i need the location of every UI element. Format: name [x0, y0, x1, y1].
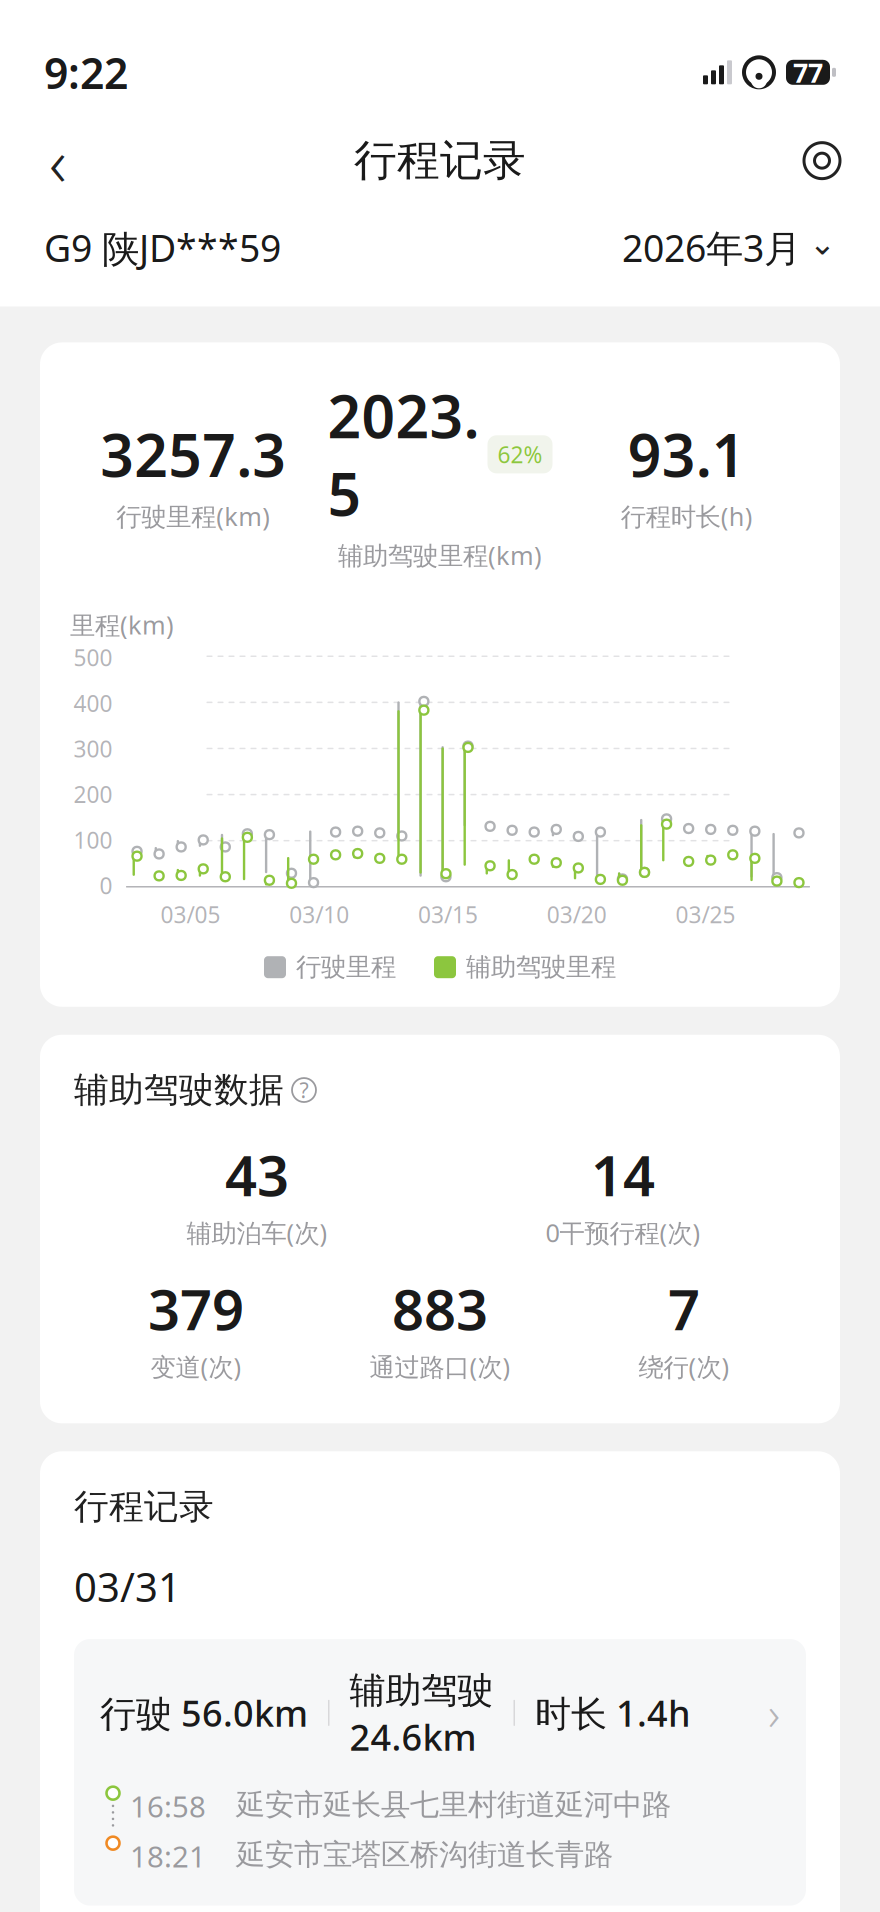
staticText: 2023.5 — [327, 376, 479, 532]
staticText: 43 — [225, 1137, 289, 1212]
staticText: ? — [299, 1076, 308, 1104]
staticText: 里程(km) — [70, 608, 174, 641]
staticText: 绕行(次) — [638, 1350, 729, 1383]
button[interactable]: 说明 — [292, 1076, 316, 1104]
staticText: 行程时长(h) — [621, 499, 753, 533]
button[interactable]: 返回 — [28, 131, 88, 191]
staticText: 62% — [497, 439, 542, 469]
staticText: 变道(次) — [150, 1350, 241, 1383]
staticText: 300 — [73, 734, 112, 764]
staticText: 辅助驾驶里程(km) — [338, 538, 542, 572]
staticText: 100 — [73, 825, 112, 855]
staticText: 14 — [591, 1137, 655, 1212]
staticText: 03/31 — [74, 1560, 181, 1613]
staticText: 时长 1.4h — [535, 1689, 691, 1737]
staticText: 93.1 — [628, 415, 746, 493]
staticText: G9 陕JD***59 — [44, 223, 281, 272]
staticText: 行程记录 — [74, 1485, 214, 1528]
staticText: › — [768, 1683, 780, 1743]
staticText: 行驶里程(km) — [116, 499, 270, 533]
staticText: 200 — [73, 779, 112, 809]
staticText: 883 — [392, 1271, 488, 1346]
staticText: 0干预行程(次) — [545, 1216, 700, 1249]
staticText: 03/20 — [547, 899, 607, 930]
staticText: 7 — [668, 1271, 700, 1346]
staticText: 辅助驾驶 24.6km — [349, 1665, 493, 1761]
staticText: 行驶里程 — [296, 952, 396, 983]
staticText: 行驶 56.0km — [100, 1689, 308, 1737]
button[interactable]: 行驶 56.0km — [74, 1639, 806, 1906]
staticText: 辅助驾驶里程 — [466, 952, 616, 983]
staticText: ⌄ — [809, 225, 836, 262]
staticText: 379 — [148, 1271, 244, 1346]
staticText: 500 — [73, 642, 112, 673]
staticText: 03/15 — [418, 899, 478, 930]
staticText: 延安市宝塔区桥沟街道长青路 — [236, 1837, 613, 1873]
staticText: 0 — [99, 870, 112, 901]
button[interactable]: 2026年3月 — [622, 223, 836, 272]
staticText: 03/05 — [160, 899, 220, 930]
staticText: 03/10 — [289, 899, 349, 930]
staticText: 77 — [793, 55, 823, 90]
staticText: 16:58 — [130, 1787, 206, 1826]
staticText: 通过路口(次) — [369, 1350, 510, 1383]
staticText: 18:21 — [130, 1837, 206, 1876]
staticText: ‹ — [49, 116, 67, 205]
staticText: 03/25 — [676, 899, 736, 930]
staticText: 行程记录 — [354, 134, 526, 187]
staticText: 辅助驾驶数据 — [74, 1069, 284, 1111]
staticText: 9:22 — [44, 44, 128, 101]
button[interactable]: 设置 — [792, 131, 852, 191]
staticText: 延安市延长县七里村街道延河中路 — [236, 1787, 671, 1823]
staticText: 辅助泊车(次) — [186, 1216, 327, 1249]
staticText: 3257.3 — [100, 415, 286, 493]
staticText: 400 — [73, 688, 112, 718]
staticText: 2026年3月 — [622, 223, 801, 272]
